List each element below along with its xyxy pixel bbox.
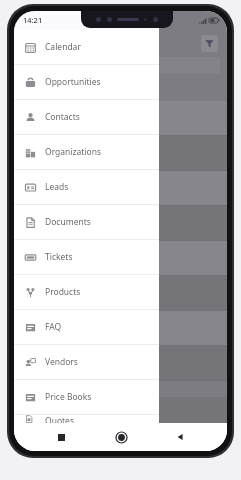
staticText: Price Books bbox=[45, 391, 92, 403]
button[interactable]: Filter bbox=[201, 35, 218, 52]
staticText: Vendors bbox=[45, 356, 78, 368]
staticText: Tickets bbox=[45, 251, 73, 263]
staticText: Calendar bbox=[45, 41, 81, 53]
staticText: Organizations bbox=[45, 146, 101, 158]
button[interactable]: Vendors bbox=[14, 345, 159, 379]
button[interactable]: Calendar bbox=[14, 30, 159, 64]
staticText: 14:21 bbox=[23, 15, 43, 25]
button[interactable]: Next page bbox=[56, 86, 68, 98]
staticText: Products bbox=[45, 286, 81, 298]
button[interactable]: Contacts bbox=[14, 100, 159, 134]
button[interactable]: Quotes bbox=[14, 415, 159, 423]
button[interactable]: Leads bbox=[14, 170, 159, 204]
staticText: Opportunities bbox=[45, 76, 101, 88]
staticText: Quotes bbox=[45, 415, 74, 423]
button[interactable]: Tickets bbox=[14, 240, 159, 274]
button[interactable]: Recent apps bbox=[48, 424, 74, 450]
button[interactable]: Back bbox=[167, 424, 193, 450]
staticText: Contacts bbox=[45, 111, 80, 123]
staticText: FAQ bbox=[45, 321, 62, 333]
staticText: Leads bbox=[45, 181, 69, 193]
button[interactable]: Previous page bbox=[26, 86, 38, 98]
button[interactable]: Price Books bbox=[14, 380, 159, 414]
button[interactable]: Opportunities bbox=[14, 65, 159, 99]
button[interactable]: Organizations bbox=[14, 135, 159, 169]
button[interactable]: Home bbox=[108, 424, 134, 450]
button[interactable]: Products bbox=[14, 275, 159, 309]
button[interactable]: Menu bbox=[112, 401, 130, 419]
staticText: Documents bbox=[45, 216, 91, 228]
button[interactable]: FAQ bbox=[14, 310, 159, 344]
button[interactable]: Documents bbox=[14, 205, 159, 239]
